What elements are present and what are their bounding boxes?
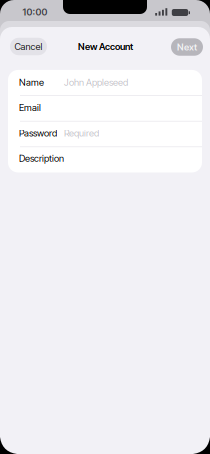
staticText: Password [19,128,57,139]
button[interactable]: Password [8,120,202,146]
staticText: New Account [78,41,133,52]
button[interactable]: Name [8,69,202,95]
staticText: Description [19,153,64,164]
button[interactable]: Cancel [10,38,47,55]
staticText: John Appleseed [64,77,128,88]
button[interactable]: Description [8,146,202,171]
button[interactable]: Email [8,95,202,120]
staticText: 10:00 [22,6,47,17]
staticText: Required [64,128,99,139]
staticText: Email [19,102,41,113]
button[interactable]: Next [171,38,203,56]
staticText: Next [177,41,197,52]
staticText: Cancel [14,41,42,52]
staticText: Name [19,77,44,88]
